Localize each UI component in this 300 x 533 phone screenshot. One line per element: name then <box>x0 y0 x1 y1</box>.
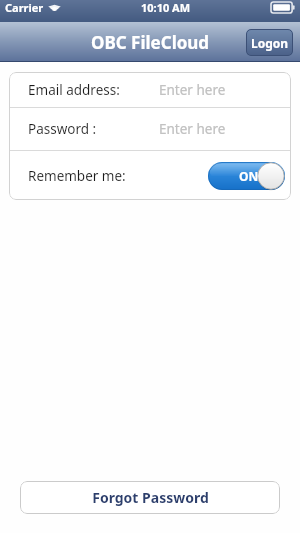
staticText: 10:10 AM <box>141 0 191 15</box>
staticText: Enter here <box>159 81 291 99</box>
button[interactable]: Password : <box>9 108 291 150</box>
button[interactable]: Logon <box>246 29 293 56</box>
staticText: Remember me: <box>28 167 126 185</box>
staticText: OBC FileCloud <box>91 31 210 54</box>
staticText: ON <box>239 168 259 184</box>
staticText: Email address: <box>28 81 120 99</box>
button[interactable]: Email address: <box>9 72 291 107</box>
button[interactable]: Forgot Password <box>20 481 280 514</box>
staticText: Password : <box>28 120 97 138</box>
staticText: Carrier <box>5 0 44 15</box>
staticText: Logon <box>251 35 289 51</box>
button[interactable]: Remember me toggle, on <box>208 162 285 190</box>
staticText: Enter here <box>159 120 291 138</box>
staticText: Forgot Password <box>92 488 209 507</box>
